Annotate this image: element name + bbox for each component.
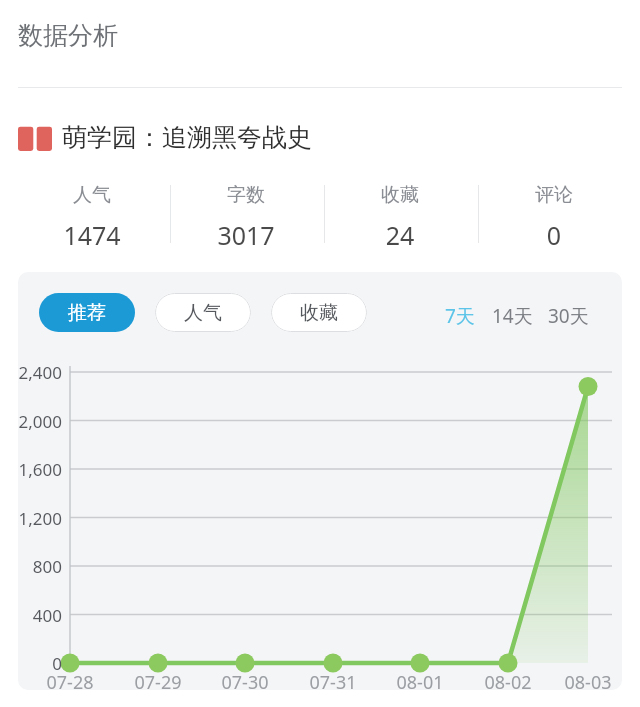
staticText: 2,000: [18, 410, 62, 433]
staticText: 24: [340, 218, 460, 252]
staticText: 收藏: [340, 183, 460, 207]
button[interactable]: 推荐: [39, 293, 135, 332]
button[interactable]: 人气: [32, 183, 152, 252]
staticText: 400: [18, 604, 62, 627]
button[interactable]: 评论: [494, 183, 614, 252]
staticText: 07-31: [293, 670, 373, 690]
staticText: 30天: [548, 303, 589, 329]
staticText: 2,400: [18, 361, 62, 384]
other: Book: [18, 124, 52, 151]
staticText: 0: [18, 652, 62, 675]
staticText: 08-01: [380, 670, 460, 690]
staticText: 推荐: [68, 301, 106, 325]
staticText: 7天: [445, 303, 475, 329]
button[interactable]: 字数: [186, 183, 306, 252]
staticText: 收藏: [300, 301, 338, 325]
button[interactable]: 7天: [442, 300, 478, 332]
button[interactable]: 人气: [155, 293, 251, 332]
staticText: 800: [18, 555, 62, 578]
staticText: 萌学园：追溯黑夸战史: [62, 122, 312, 153]
staticText: 人气: [184, 301, 222, 325]
staticText: 3017: [186, 218, 306, 252]
button[interactable]: 收藏: [340, 183, 460, 252]
staticText: 08-02: [468, 670, 548, 690]
staticText: 人气: [32, 183, 152, 207]
staticText: 评论: [494, 183, 614, 207]
button[interactable]: 30天: [545, 300, 592, 332]
staticText: 08-03: [548, 670, 622, 690]
staticText: 07-28: [30, 670, 110, 690]
staticText: 1,600: [18, 458, 62, 481]
staticText: 字数: [186, 183, 306, 207]
staticText: 数据分析: [18, 20, 118, 51]
staticText: 0: [494, 218, 614, 252]
staticText: 1474: [32, 218, 152, 252]
button[interactable]: 14天: [489, 300, 536, 332]
staticText: 14天: [492, 303, 533, 329]
staticText: 1,200: [18, 507, 62, 530]
button[interactable]: 收藏: [271, 293, 367, 332]
staticText: 07-30: [205, 670, 285, 690]
staticText: 07-29: [118, 670, 198, 690]
